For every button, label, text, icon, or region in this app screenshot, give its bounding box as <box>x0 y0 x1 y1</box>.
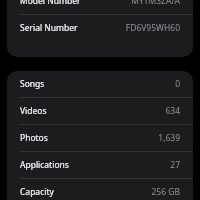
staticText: 256 GB <box>151 186 180 198</box>
button[interactable]: Videos <box>7 98 193 124</box>
staticText: Videos <box>20 105 47 117</box>
staticText: 1,639 <box>158 132 180 144</box>
staticText: Applications <box>20 159 69 171</box>
staticText: Capacity <box>20 186 54 198</box>
staticText: Serial Number <box>20 22 78 34</box>
staticText: MYTM3ZA/A <box>131 0 180 7</box>
staticText: 0 <box>175 78 180 90</box>
button[interactable]: Songs <box>7 71 193 97</box>
button[interactable]: Model Number <box>7 0 193 14</box>
button[interactable]: Applications <box>7 152 193 178</box>
button[interactable]: Photos <box>7 125 193 151</box>
staticText: Model Number <box>20 0 81 7</box>
staticText: 634 <box>165 105 180 117</box>
staticText: 27 <box>170 159 180 171</box>
staticText: Photos <box>20 132 48 144</box>
staticText: Songs <box>20 78 45 90</box>
button[interactable]: Capacity <box>7 179 193 200</box>
staticText: FD6V95WH60 <box>125 22 180 34</box>
button[interactable]: Serial Number <box>7 15 193 41</box>
